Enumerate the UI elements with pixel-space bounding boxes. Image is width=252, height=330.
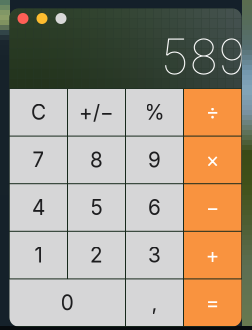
button[interactable]: − xyxy=(184,184,241,231)
staticText: 2 xyxy=(90,243,103,268)
staticText: 7 xyxy=(32,147,44,172)
staticText: + xyxy=(206,243,220,268)
staticText: +/− xyxy=(79,100,114,125)
staticText: 9 xyxy=(148,147,161,172)
button[interactable]: 9 xyxy=(126,137,183,183)
button[interactable]: 0 xyxy=(9,279,125,326)
staticText: − xyxy=(206,195,220,220)
staticText: 8 xyxy=(90,147,103,172)
staticText: C xyxy=(31,100,46,125)
button[interactable]: % xyxy=(126,89,183,136)
button[interactable]: 2 xyxy=(68,232,125,278)
staticText: , xyxy=(151,290,157,315)
button[interactable]: 3 xyxy=(126,232,183,278)
staticText: × xyxy=(206,147,220,172)
button[interactable]: +/− xyxy=(68,89,125,136)
button[interactable]: = xyxy=(184,279,241,326)
button[interactable]: × xyxy=(184,137,241,183)
staticText: 0 xyxy=(61,290,74,315)
staticText: 5 xyxy=(90,195,102,220)
staticText: 4 xyxy=(32,195,45,220)
staticText: ÷ xyxy=(206,100,220,125)
staticText: 1 xyxy=(34,243,42,268)
button[interactable]: 5 xyxy=(68,184,125,231)
staticText: 6 xyxy=(148,195,161,220)
staticText: 589 xyxy=(161,27,246,86)
staticText: 3 xyxy=(148,243,161,268)
button[interactable]: ÷ xyxy=(184,89,241,136)
button[interactable]: 1 xyxy=(10,232,67,278)
button[interactable]: + xyxy=(184,232,241,278)
button[interactable]: C xyxy=(10,89,67,136)
staticText: = xyxy=(206,290,220,315)
button[interactable]: 4 xyxy=(10,184,67,231)
staticText: % xyxy=(144,100,164,125)
button[interactable]: , xyxy=(126,279,183,326)
button[interactable]: 7 xyxy=(10,137,67,183)
button[interactable]: 6 xyxy=(126,184,183,231)
button[interactable]: 8 xyxy=(68,137,125,183)
